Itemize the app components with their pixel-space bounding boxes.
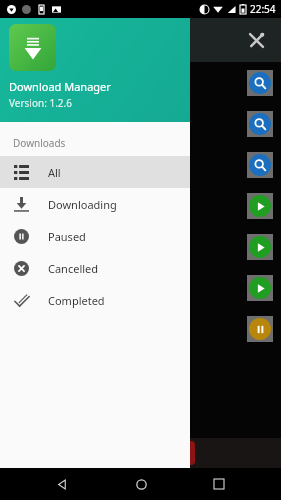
- button[interactable]: Power: [171, 441, 195, 465]
- staticText: Version: 1.2.6: [9, 96, 72, 110]
- button[interactable]: ...02172020-...: [0, 62, 281, 103]
- button[interactable]: ...64.exe: [0, 308, 281, 349]
- button[interactable]: PLAY: [0, 267, 281, 308]
- button[interactable]: SEARCH: [0, 144, 281, 185]
- staticText: Downloads: [13, 136, 66, 150]
- button[interactable]: Cancelled: [0, 252, 190, 284]
- button[interactable]: SEARCH: [249, 113, 271, 135]
- button[interactable]: PLAY: [249, 236, 271, 258]
- button[interactable]: Home: [125, 468, 157, 500]
- button[interactable]: PAUSE: [249, 318, 271, 340]
- staticText: Cancelled: [48, 261, 99, 276]
- button[interactable]: SEARCH: [0, 103, 281, 144]
- button[interactable]: Settings: [241, 25, 271, 55]
- button[interactable]: PLAY: [249, 277, 271, 299]
- staticText: Download Manager: [9, 79, 111, 94]
- staticText: Downloading: [48, 197, 117, 212]
- button[interactable]: Paused: [0, 220, 190, 252]
- staticText: ...02172020-...: [2, 65, 61, 77]
- button[interactable]: Recents: [203, 468, 235, 500]
- button[interactable]: SEARCH: [249, 154, 271, 176]
- button[interactable]: Downloading: [0, 188, 190, 220]
- staticText: 22:54: [250, 2, 276, 16]
- staticText: All: [48, 165, 61, 180]
- staticText: ...es.xls: [2, 188, 33, 200]
- button[interactable]: PLAY: [0, 226, 281, 267]
- button[interactable]: Completed: [0, 284, 190, 316]
- button[interactable]: Back: [46, 468, 78, 500]
- staticText: Paused: [48, 229, 86, 244]
- staticText: Completed: [48, 293, 105, 308]
- button[interactable]: SEARCH: [249, 72, 271, 94]
- button[interactable]: PLAY: [249, 195, 271, 217]
- button[interactable]: ...es.xls: [0, 185, 281, 226]
- button[interactable]: All: [0, 156, 190, 188]
